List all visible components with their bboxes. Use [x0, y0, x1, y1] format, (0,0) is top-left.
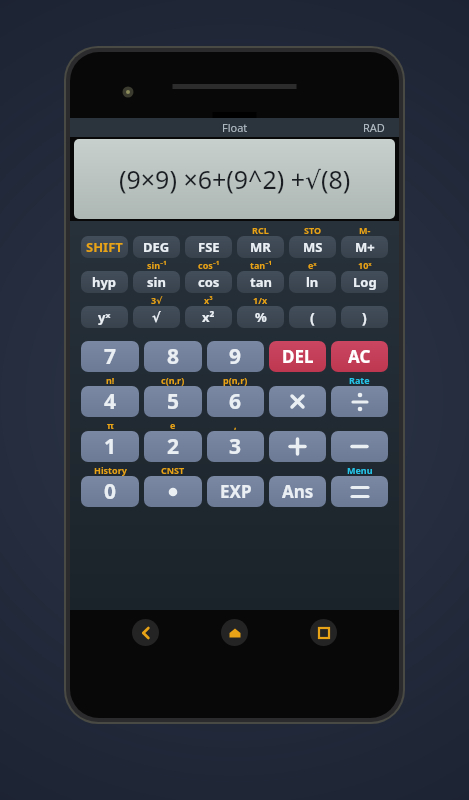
button[interactable]: ( [289, 306, 336, 328]
button[interactable]: sin [133, 271, 180, 293]
button[interactable]: 7 [81, 341, 139, 372]
staticText: yˣ [98, 308, 111, 326]
button[interactable]: % [237, 306, 284, 328]
button[interactable]: cos [185, 271, 232, 293]
button[interactable]: 4 [81, 386, 139, 417]
button[interactable]: M+ [341, 236, 388, 258]
staticText: c(n,r) [161, 374, 185, 386]
staticText: π [107, 419, 114, 431]
staticText: e [170, 419, 176, 431]
staticText: 2 [167, 432, 180, 461]
staticText: Menu [347, 464, 373, 476]
staticText: MR [250, 238, 271, 256]
staticText: √ [152, 310, 161, 325]
button[interactable]: Equals [331, 476, 388, 507]
button[interactable]: 3 [207, 431, 264, 462]
staticText: tan [250, 273, 272, 291]
button[interactable]: 5 [144, 386, 202, 417]
button[interactable]: √ [133, 306, 180, 328]
button[interactable]: Plus [269, 431, 326, 462]
button[interactable]: 6 [207, 386, 264, 417]
staticText: sin⁻¹ [147, 259, 167, 271]
button[interactable]: x² [185, 306, 232, 328]
staticText: eˣ [308, 259, 317, 271]
staticText: cos [198, 273, 220, 291]
staticText: 7 [104, 342, 117, 371]
staticText: 1/x [253, 294, 268, 306]
button[interactable]: Back [132, 619, 159, 646]
button[interactable]: Minus [331, 431, 388, 462]
button[interactable]: Decimal point [144, 476, 202, 507]
button[interactable]: yˣ [81, 306, 128, 328]
button[interactable]: Log [341, 271, 388, 293]
staticText: SHIFT [86, 238, 123, 256]
button[interactable]: Home [221, 619, 248, 646]
staticText: MS [303, 238, 323, 256]
button[interactable]: 9 [207, 341, 264, 372]
staticText: RAD [363, 120, 385, 135]
staticText: n! [106, 374, 115, 386]
staticText: 10ˣ [358, 259, 372, 271]
staticText: ( [310, 308, 315, 327]
staticText: CNST [161, 464, 185, 476]
staticText: sin [147, 273, 166, 291]
staticText: Rate [349, 374, 370, 386]
staticText: EXP [220, 480, 252, 503]
button[interactable]: DEL [269, 341, 326, 372]
staticText: cos⁻¹ [198, 259, 220, 271]
staticText: RCL [252, 224, 269, 236]
button[interactable]: AC [331, 341, 388, 372]
button[interactable]: DEG [133, 236, 180, 258]
button[interactable]: hyp [81, 271, 128, 293]
staticText: p(n,r) [223, 374, 248, 386]
button[interactable]: 0 [81, 476, 139, 507]
staticText: 6 [229, 387, 242, 416]
button[interactable]: Recents [310, 619, 337, 646]
button[interactable]: MR [237, 236, 284, 258]
staticText: DEL [282, 345, 314, 368]
button[interactable]: 8 [144, 341, 202, 372]
button[interactable]: ) [341, 306, 388, 328]
staticText: 9 [229, 342, 242, 371]
button[interactable]: Multiply [269, 386, 326, 417]
button[interactable]: FSE [185, 236, 232, 258]
staticText: x³ [204, 294, 213, 306]
button[interactable]: tan [237, 271, 284, 293]
staticText: (9×9) ×6+(9^2) +√(8) [119, 162, 351, 196]
button[interactable]: 2 [144, 431, 202, 462]
staticText: 4 [104, 387, 117, 416]
staticText: STO [304, 224, 322, 236]
staticText: % [255, 308, 267, 326]
staticText: ) [362, 308, 367, 327]
staticText: , [234, 419, 237, 431]
staticText: Log [353, 273, 377, 291]
button[interactable]: ln [289, 271, 336, 293]
staticText: DEG [143, 238, 170, 256]
staticText: FSE [198, 238, 220, 256]
staticText: 8 [167, 342, 180, 371]
staticText: tan⁻¹ [250, 259, 272, 271]
staticText: hyp [92, 273, 117, 291]
staticText: ln [306, 273, 319, 291]
button[interactable]: Divide [331, 386, 388, 417]
button[interactable]: MS [289, 236, 336, 258]
button[interactable]: Ans [269, 476, 326, 507]
staticText: Float [222, 120, 248, 135]
button[interactable]: EXP [207, 476, 264, 507]
staticText: 3√ [151, 294, 163, 306]
button[interactable]: 1 [81, 431, 139, 462]
staticText: Ans [282, 480, 314, 503]
staticText: M- [359, 224, 371, 236]
staticText: x² [202, 308, 215, 326]
staticText: 0 [104, 477, 117, 506]
button[interactable]: SHIFT [81, 236, 128, 258]
staticText: History [94, 464, 127, 476]
staticText: M+ [355, 238, 375, 256]
staticText: AC [348, 345, 371, 368]
staticText: 5 [167, 387, 180, 416]
staticText: 1 [104, 432, 117, 461]
staticText: 3 [229, 432, 242, 461]
